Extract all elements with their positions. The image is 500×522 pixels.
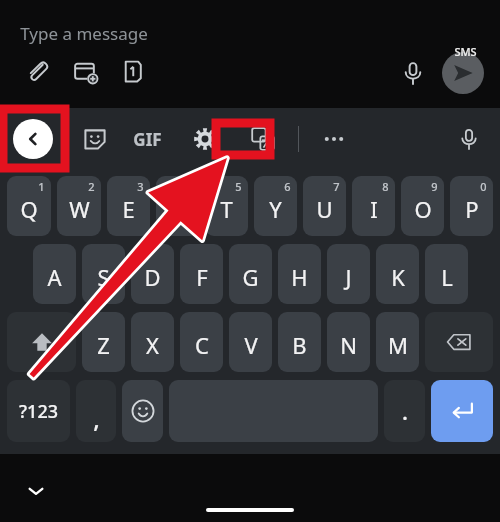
button[interactable]: I (352, 176, 395, 236)
button[interactable]: Attach file (20, 54, 54, 88)
staticText: F (196, 262, 208, 292)
staticText: P (465, 194, 479, 224)
staticText: L (441, 262, 453, 292)
staticText: GIF (133, 128, 162, 151)
staticText: 1 (38, 179, 45, 194)
staticText: K (391, 262, 405, 292)
button[interactable]: Symbols (7, 380, 70, 442)
staticText: R (171, 194, 185, 224)
staticText: SMS (454, 44, 477, 59)
staticText: T (220, 194, 233, 224)
staticText: V (244, 330, 258, 360)
staticText: C (195, 330, 209, 360)
staticText: . (402, 396, 408, 426)
staticText: G (242, 262, 259, 292)
staticText: E (122, 194, 135, 224)
staticText: Type a message (20, 22, 148, 45)
staticText: H (291, 262, 308, 292)
staticText: 3 (137, 179, 144, 194)
staticText: Y (269, 194, 282, 224)
button[interactable]: Voice input (396, 56, 430, 90)
button[interactable]: B (278, 312, 321, 372)
button[interactable]: Backspace (425, 312, 493, 372)
button[interactable]: H (278, 244, 321, 304)
staticText: W (69, 194, 90, 224)
button[interactable]: D (131, 244, 174, 304)
button[interactable]: X (131, 312, 174, 372)
button[interactable]: T (205, 176, 248, 236)
button[interactable]: Number one (116, 54, 150, 88)
staticText: 6 (284, 179, 291, 194)
button[interactable]: Add card (68, 54, 102, 88)
button[interactable]: Emoji (122, 380, 163, 442)
button[interactable]: W (57, 176, 101, 236)
button[interactable]: E (107, 176, 150, 236)
staticText: 8 (382, 179, 389, 194)
button[interactable]: J (327, 244, 370, 304)
button[interactable]: Translate (234, 108, 292, 170)
staticText: A (47, 262, 62, 292)
button[interactable]: P (450, 176, 493, 236)
button[interactable]: Stickers (72, 108, 118, 170)
staticText: J (345, 262, 352, 292)
staticText: 2 (88, 179, 95, 194)
button[interactable]: A (33, 244, 76, 304)
button[interactable]: GIF (118, 108, 176, 170)
button[interactable]: Q (7, 176, 51, 236)
staticText: 7 (333, 179, 340, 194)
button[interactable]: N (327, 312, 370, 372)
button[interactable]: Enter (431, 380, 493, 442)
staticText: D (144, 262, 161, 292)
staticText: I (370, 194, 378, 224)
staticText: 9 (431, 179, 438, 194)
button[interactable]: M (376, 312, 419, 372)
button[interactable]: C (180, 312, 223, 372)
button[interactable]: Shift (7, 312, 76, 372)
button[interactable]: L (425, 244, 468, 304)
button[interactable]: Z (82, 312, 125, 372)
button[interactable]: Settings (176, 108, 234, 170)
staticText: X (146, 330, 159, 360)
button[interactable]: Comma (76, 380, 116, 442)
staticText: 0 (480, 179, 487, 194)
staticText: Q (20, 194, 38, 224)
button[interactable]: S (82, 244, 125, 304)
staticText: N (340, 330, 357, 360)
staticText: , (93, 402, 100, 435)
staticText: B (292, 330, 307, 360)
button[interactable]: V (229, 312, 272, 372)
staticText: ?123 (19, 399, 58, 424)
button[interactable]: O (401, 176, 444, 236)
staticText: U (316, 194, 333, 224)
button[interactable]: F (180, 244, 223, 304)
staticText: O (414, 194, 432, 224)
staticText: Z (97, 330, 110, 360)
button[interactable]: Back (13, 119, 53, 159)
button[interactable]: G (229, 244, 272, 304)
staticText: M (388, 330, 408, 360)
button[interactable]: R (156, 176, 199, 236)
button[interactable]: U (303, 176, 346, 236)
staticText: 5 (235, 179, 242, 194)
button[interactable]: K (376, 244, 419, 304)
button[interactable]: Y (254, 176, 297, 236)
button[interactable]: Hide keyboard (20, 475, 52, 507)
button[interactable]: Period (384, 380, 425, 442)
button[interactable]: Send message (442, 52, 484, 94)
button[interactable]: Voice typing (446, 108, 492, 170)
staticText: S (97, 262, 110, 292)
button[interactable]: More options (305, 108, 363, 170)
